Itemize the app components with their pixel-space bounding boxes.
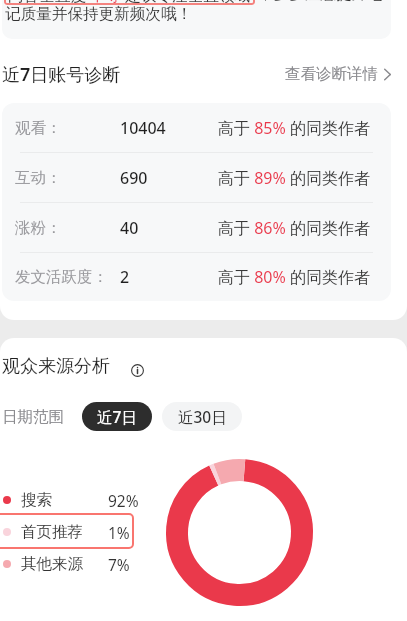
staticText: 高于 85% 的同类作者 (218, 117, 370, 139)
button[interactable]: 近30日 (162, 402, 242, 431)
button[interactable]: 近7日 (82, 402, 152, 431)
staticText: 观众来源分析 (2, 355, 110, 378)
button[interactable]: 涨粉： (2, 203, 391, 253)
staticText: 首页推荐 (21, 522, 83, 542)
staticText: 搜索 (21, 490, 52, 510)
button[interactable]: 查看诊断详情 (285, 60, 391, 88)
staticText: 查看诊断详情 (285, 64, 378, 84)
staticText: 其他来源 (21, 554, 83, 574)
staticText: ，多多注意提升笔 (258, 0, 383, 4)
staticText: 2 (120, 266, 130, 288)
staticText: 高于 80% 的同类作者 (218, 266, 370, 288)
button[interactable]: 发文活跃度： (2, 253, 391, 301)
staticText: 10404 (120, 117, 166, 139)
staticText: 近7日账号诊断 (2, 62, 121, 87)
button[interactable]: 互动： (2, 153, 391, 203)
staticText: 近30日 (178, 406, 227, 427)
staticText: 高于 89% 的同类作者 (218, 167, 370, 189)
staticText: 内容垂直度 中等 建议专注垂直领域 (8, 0, 251, 5)
staticText: 日期范围 (2, 407, 64, 427)
staticText: 涨粉： (15, 218, 62, 238)
staticText: 高于 86% 的同类作者 (218, 217, 370, 239)
staticText: 互动： (15, 168, 62, 188)
staticText: 记质量并保持更新频次哦！ (5, 4, 193, 24)
staticText: 92% (108, 490, 139, 511)
staticText: 1% (108, 522, 130, 543)
staticText: 7% (108, 554, 130, 575)
button[interactable]: 说明 (130, 363, 144, 377)
staticText: 40 (120, 217, 139, 239)
staticText: 发文活跃度： (15, 267, 108, 287)
staticText: 观看： (15, 118, 62, 138)
staticText: 690 (120, 167, 148, 189)
staticText: 近7日 (97, 406, 137, 427)
button[interactable]: 其他来源 (0, 548, 140, 580)
button[interactable]: 首页推荐 (0, 516, 140, 548)
button[interactable]: 搜索 (0, 484, 140, 516)
button[interactable]: 观看： (2, 103, 391, 153)
